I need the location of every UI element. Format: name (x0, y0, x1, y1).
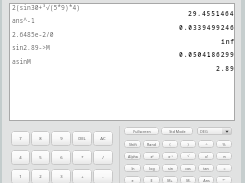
staticText: ← (222, 178, 226, 182)
staticText: + (81, 174, 84, 180)
button[interactable]: M- (180, 176, 196, 183)
staticText: asinM (12, 57, 31, 66)
staticText: 7 (19, 136, 22, 142)
staticText: 8 (39, 136, 42, 142)
staticText: = (223, 166, 226, 171)
staticText: E (150, 178, 153, 183)
staticText: x⁻¹ (168, 154, 173, 159)
button[interactable]: x! (198, 152, 214, 160)
button[interactable]: Std Mode (161, 127, 193, 135)
staticText: 29.4551464 (188, 9, 235, 18)
staticText: / (102, 155, 104, 161)
staticText: AC (100, 136, 106, 142)
staticText: cos (185, 166, 191, 171)
staticText: Alpha (128, 154, 138, 159)
button[interactable]: Ans (198, 176, 214, 183)
button[interactable]: 4 (11, 150, 30, 165)
staticText: 2(sin30+³√(5*9)*4) (12, 3, 81, 12)
button[interactable]: ^ (198, 140, 214, 148)
staticText: 6 (60, 155, 63, 161)
staticText: ans^-1 (12, 16, 35, 25)
button[interactable]: % (216, 140, 232, 148)
staticText: DEL (78, 136, 86, 142)
staticText: sin2.89->M (12, 43, 50, 52)
staticText: ln (131, 166, 135, 171)
staticText: e (131, 178, 134, 183)
staticText: 9 (60, 136, 63, 142)
button[interactable]: ← (216, 176, 232, 183)
button[interactable]: * (72, 150, 92, 165)
staticText: Rand (147, 142, 156, 147)
staticText: tan (203, 166, 209, 171)
button[interactable]: 2 (31, 169, 50, 183)
button[interactable]: - (93, 169, 113, 183)
staticText: 0.0504186299 (179, 50, 235, 59)
button[interactable]: sin (162, 164, 178, 172)
button[interactable]: AC (93, 131, 113, 146)
staticText: 2.6485e-2/0 (12, 30, 54, 39)
staticText: Std Mode (169, 129, 186, 134)
button[interactable]: Rand (143, 140, 160, 148)
button[interactable]: e (124, 176, 141, 183)
staticText: x! (205, 154, 208, 159)
staticText: DEG (200, 129, 208, 134)
staticText: 2 (39, 174, 42, 180)
button[interactable]: M+ (162, 176, 178, 183)
button[interactable]: DEL (72, 131, 92, 146)
button[interactable]: cos (180, 164, 196, 172)
button[interactable]: x² (143, 152, 160, 160)
staticText: x² (150, 154, 154, 159)
button[interactable]: 9 (51, 131, 71, 146)
staticText: - (102, 174, 104, 180)
staticText: ) (187, 142, 189, 147)
button[interactable]: 1 (11, 169, 30, 183)
staticText: √ (187, 154, 190, 158)
staticText: Fullscreen (133, 129, 151, 134)
button[interactable]: π (216, 152, 232, 160)
staticText: 2.89 (216, 64, 235, 73)
button[interactable]: Alpha (124, 152, 141, 160)
staticText: M- (186, 178, 191, 183)
button[interactable]: 6 (51, 150, 71, 165)
button[interactable]: log (143, 164, 160, 172)
staticText: sin (168, 166, 173, 171)
staticText: % (222, 142, 226, 147)
button[interactable]: 5 (31, 150, 50, 165)
button[interactable]: Fullscreen (124, 127, 159, 135)
staticText: 1 (19, 174, 22, 180)
staticText: * (81, 155, 84, 161)
staticText: ^ (205, 142, 208, 147)
staticText: Shift (129, 142, 137, 147)
staticText: M+ (167, 178, 173, 183)
staticText: Ans (203, 178, 210, 183)
button[interactable]: tan (198, 164, 214, 172)
button[interactable]: / (93, 150, 113, 165)
button[interactable]: Shift (124, 140, 141, 148)
button[interactable]: E (143, 176, 160, 183)
staticText: log (149, 166, 155, 171)
staticText: ( (169, 142, 171, 147)
button[interactable]: 8 (31, 131, 50, 146)
staticText: inf (221, 37, 235, 46)
button[interactable]: ( (162, 140, 178, 148)
button[interactable]: ) (180, 140, 196, 148)
button[interactable]: DEG (197, 127, 232, 135)
button[interactable]: √ (180, 152, 196, 160)
staticText: 3 (60, 174, 63, 180)
staticText: 0.0339499246 (179, 23, 235, 32)
staticText: 5 (39, 155, 42, 161)
button[interactable]: 3 (51, 169, 71, 183)
button[interactable]: 7 (11, 131, 30, 146)
staticText: π (223, 154, 226, 159)
button[interactable]: ln (124, 164, 141, 172)
button[interactable]: + (72, 169, 92, 183)
button[interactable]: x⁻¹ (162, 152, 178, 160)
staticText: 4 (19, 155, 22, 161)
other: Angle unit (222, 127, 232, 135)
button[interactable]: = (216, 164, 232, 172)
